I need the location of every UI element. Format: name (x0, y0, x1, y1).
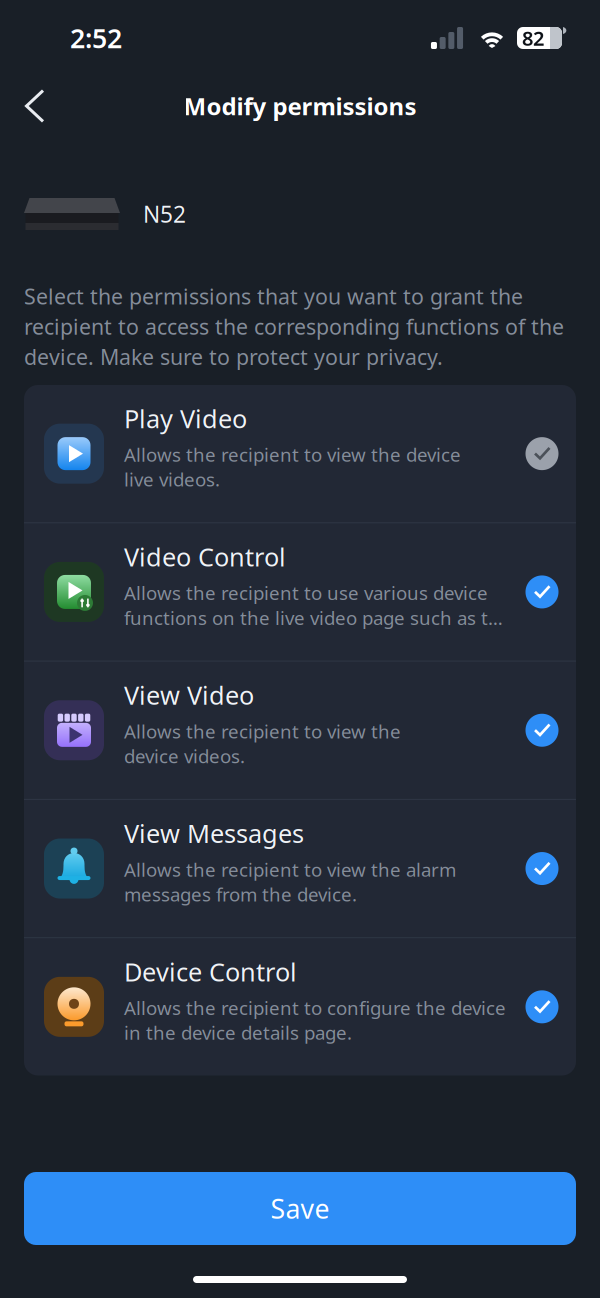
staticText: Allows the recipient to view the alarm m… (124, 857, 456, 907)
staticText: View Messages (124, 816, 304, 850)
button[interactable]: Permission enabled (516, 704, 568, 756)
button[interactable]: Back (0, 80, 61, 132)
staticText: Allows the recipient to use various devi… (124, 580, 503, 630)
staticText: Save (270, 1191, 329, 1226)
button[interactable]: Play Video (24, 385, 576, 522)
staticText: Play Video (124, 401, 247, 435)
button[interactable]: Permission enabled (516, 842, 568, 894)
button[interactable]: View Messages (24, 800, 576, 937)
button[interactable]: View Video (24, 662, 576, 799)
staticText: 82 (522, 25, 544, 51)
staticText: Device Control (124, 955, 297, 988)
button[interactable]: Save (24, 1172, 576, 1245)
button[interactable]: Device Control (24, 938, 576, 1075)
staticText: Allows the recipient to view the device … (124, 719, 401, 768)
staticText: View Video (124, 678, 254, 712)
staticText: Allows the recipient to configure the de… (124, 995, 506, 1045)
button[interactable]: Permission enabled (516, 566, 568, 618)
staticText: Video Control (124, 540, 286, 573)
button[interactable]: Video Control (24, 523, 576, 661)
button[interactable]: Permission locked (516, 428, 568, 480)
staticText: N52 (143, 199, 186, 229)
staticText: Select the permissions that you want to … (24, 282, 564, 371)
staticText: 2:52 (70, 20, 122, 56)
button[interactable]: Permission enabled (516, 981, 568, 1033)
staticText: Modify permissions (183, 90, 416, 122)
staticText: Allows the recipient to view the device … (124, 442, 461, 492)
